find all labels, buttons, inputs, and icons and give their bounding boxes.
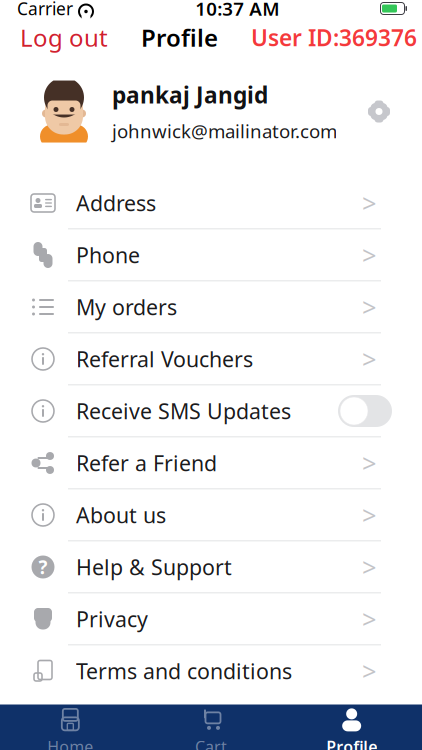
button[interactable]: User ID:369376 (251, 16, 422, 58)
staticText: > (362, 550, 376, 584)
staticText: pankaj Jangid (112, 80, 268, 110)
button[interactable]: My orders (0, 281, 422, 332)
staticText: Receive SMS Updates (76, 397, 291, 425)
staticText: > (362, 186, 376, 220)
button[interactable]: Privacy (0, 593, 422, 644)
button[interactable]: Receive SMS Updates (0, 385, 422, 436)
staticText: Phone (76, 241, 140, 269)
button[interactable]: Log out (0, 16, 108, 59)
staticText: Referral Vouchers (76, 345, 253, 373)
staticText: > (362, 498, 376, 532)
staticText: 10:37 AM (195, 0, 279, 21)
staticText: Privacy (76, 605, 148, 633)
staticText: johnwick@mailinator.com (112, 119, 337, 143)
staticText: Refer a Friend (76, 449, 217, 477)
staticText: > (362, 654, 376, 688)
staticText: Carrier (17, 0, 73, 20)
staticText: Help & Support (76, 553, 232, 581)
staticText: User ID:369376 (251, 22, 417, 52)
button[interactable]: Phone (0, 229, 422, 280)
button[interactable]: Referral Vouchers (0, 333, 422, 384)
staticText: Address (76, 189, 156, 217)
button[interactable]: Refer a Friend (0, 437, 422, 488)
staticText: > (362, 342, 376, 376)
staticText: About us (76, 501, 166, 529)
staticText: Profile (326, 736, 377, 750)
staticText: Home (47, 736, 93, 750)
button[interactable]: Address (0, 177, 422, 228)
staticText: Log out (20, 22, 108, 53)
button[interactable]: Cart (141, 700, 281, 750)
staticText: Terms and conditions (76, 657, 292, 685)
staticText: > (362, 446, 376, 480)
button[interactable]: Terms and conditions (0, 645, 422, 696)
staticText: Cart (195, 736, 227, 750)
button[interactable]: Home (0, 700, 141, 750)
button[interactable]: ? (0, 541, 422, 592)
button[interactable]: About us (0, 489, 422, 540)
staticText: Profile (141, 22, 218, 53)
staticText: My orders (76, 293, 177, 321)
staticText: > (362, 290, 376, 324)
staticText: > (362, 602, 376, 636)
staticText: > (362, 238, 376, 272)
button[interactable]: Settings (366, 90, 422, 132)
staticText: ? (38, 555, 47, 579)
button[interactable]: Profile (281, 700, 422, 750)
